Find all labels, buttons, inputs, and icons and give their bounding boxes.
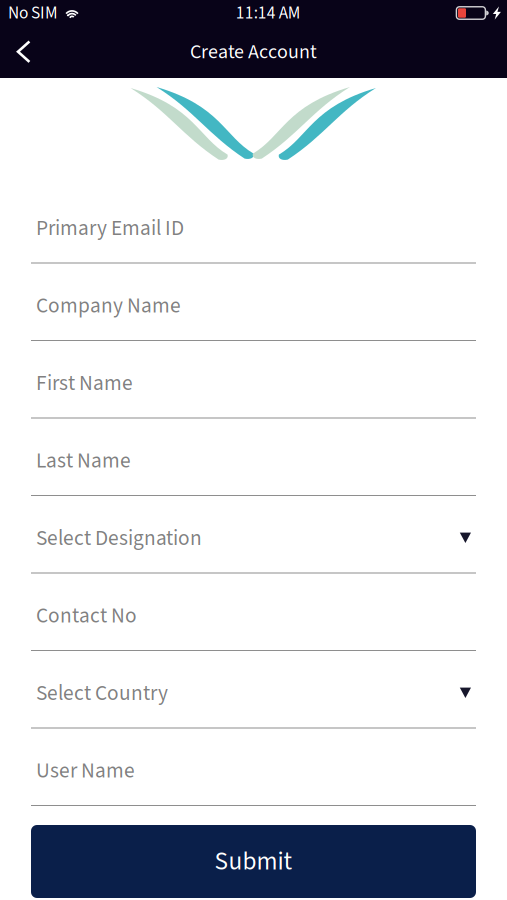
- staticText: Select Country: [36, 678, 168, 708]
- staticText: No SIM: [8, 1, 58, 25]
- button[interactable]: Contact No: [31, 573, 476, 651]
- button[interactable]: Last Name: [31, 418, 476, 496]
- button[interactable]: Select Designation: [31, 496, 476, 573]
- staticText: Select Designation: [36, 523, 202, 553]
- staticText: Company Name: [36, 291, 181, 321]
- staticText: Primary Email ID: [36, 213, 184, 243]
- button[interactable]: User Name: [31, 728, 476, 806]
- staticText: 11:14 AM: [236, 1, 301, 25]
- staticText: Submit: [214, 843, 292, 880]
- staticText: First Name: [36, 368, 133, 398]
- button[interactable]: Primary Email ID: [31, 186, 476, 263]
- button[interactable]: First Name: [31, 341, 476, 418]
- button[interactable]: Company Name: [31, 263, 476, 341]
- button[interactable]: Back: [0, 26, 48, 78]
- staticText: User Name: [36, 756, 135, 786]
- staticText: Last Name: [36, 446, 131, 476]
- button[interactable]: Submit: [31, 825, 476, 898]
- button[interactable]: Select Country: [31, 651, 476, 728]
- staticText: Contact No: [36, 601, 137, 631]
- staticText: Create Account: [190, 38, 317, 66]
